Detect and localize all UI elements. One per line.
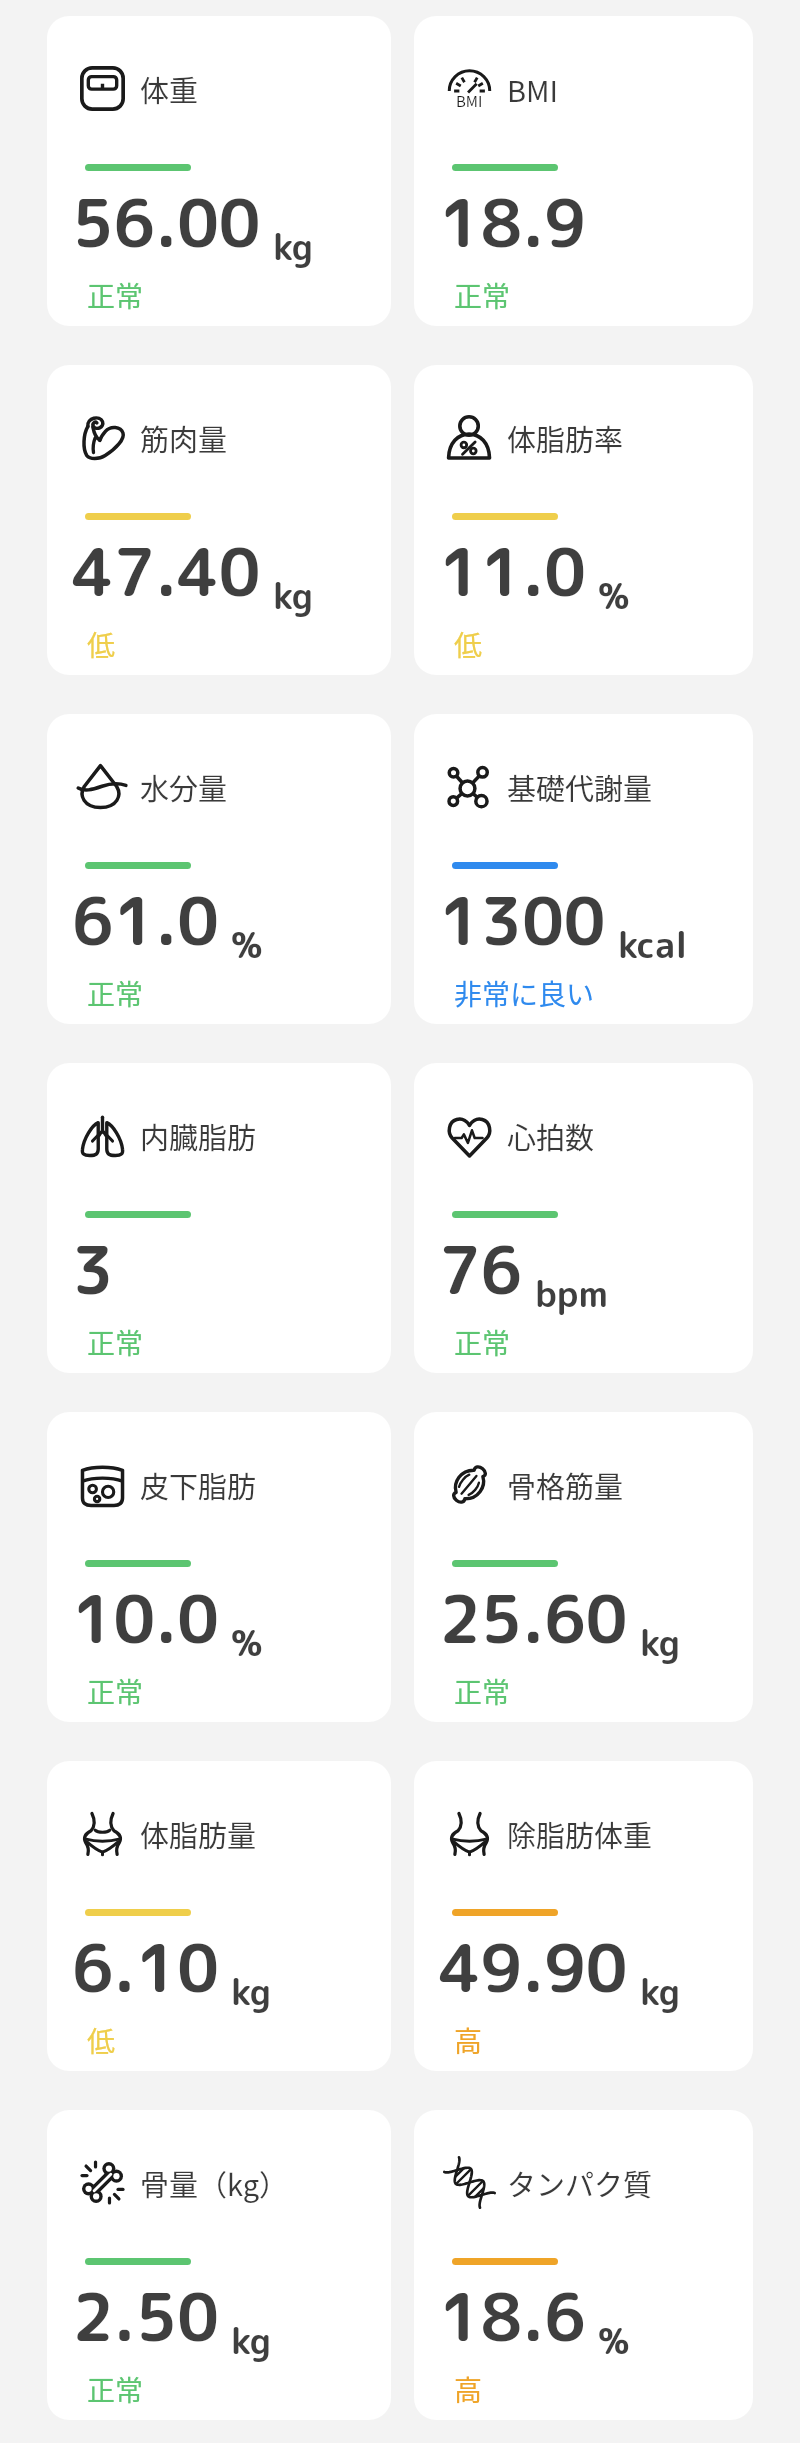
staticText: 低 bbox=[87, 624, 116, 665]
staticText: 25.60 bbox=[439, 1573, 628, 1664]
staticText: 皮下脂肪 bbox=[140, 1464, 257, 1506]
staticText: 6.10 bbox=[72, 1922, 219, 2013]
staticText: 2.50 bbox=[72, 2271, 219, 2362]
button[interactable]: 除脂肪体重 bbox=[414, 1761, 753, 2071]
staticText: 18.9 bbox=[439, 177, 586, 268]
staticText: 1300 bbox=[439, 875, 606, 966]
staticText: 低 bbox=[87, 2020, 116, 2061]
staticText: 正常 bbox=[87, 2369, 144, 2410]
staticText: kg bbox=[231, 1966, 272, 2016]
staticText: kcal bbox=[618, 919, 688, 969]
staticText: kg bbox=[273, 570, 314, 620]
staticText: 体脂肪量 bbox=[140, 1813, 257, 1855]
staticText: タンパク質 bbox=[507, 2162, 653, 2204]
staticText: 正常 bbox=[87, 275, 144, 316]
staticText: 正常 bbox=[87, 1671, 144, 1712]
staticText: 筋肉量 bbox=[140, 417, 228, 459]
button[interactable]: 骨量（kg） bbox=[47, 2110, 391, 2420]
staticText: 10.0 bbox=[72, 1573, 219, 1664]
staticText: 正常 bbox=[454, 1322, 511, 1363]
staticText: 高 bbox=[454, 2020, 483, 2061]
staticText: % bbox=[231, 1617, 263, 1667]
staticText: 骨量（kg） bbox=[140, 2162, 289, 2204]
button[interactable]: 皮下脂肪 bbox=[47, 1412, 391, 1722]
staticText: 61.0 bbox=[72, 875, 219, 966]
staticText: % bbox=[231, 919, 263, 969]
staticText: 47.40 bbox=[72, 526, 261, 617]
button[interactable]: 体脂肪量 bbox=[47, 1761, 391, 2071]
button[interactable]: 内臓脂肪 bbox=[47, 1063, 391, 1373]
staticText: bpm bbox=[535, 1268, 608, 1318]
staticText: 低 bbox=[454, 624, 483, 665]
staticText: 水分量 bbox=[140, 766, 228, 808]
button[interactable]: 水分量 bbox=[47, 714, 391, 1024]
staticText: 体脂肪率 bbox=[507, 417, 624, 459]
staticText: 心拍数 bbox=[507, 1115, 595, 1157]
staticText: 内臓脂肪 bbox=[140, 1115, 257, 1157]
staticText: 18.6 bbox=[439, 2271, 586, 2362]
button[interactable]: 体脂肪率 bbox=[414, 365, 753, 675]
button[interactable]: 体重 bbox=[47, 16, 391, 326]
staticText: 体重 bbox=[140, 68, 199, 110]
button[interactable]: 筋肉量 bbox=[47, 365, 391, 675]
staticText: 非常に良い bbox=[454, 973, 595, 1014]
staticText: kg bbox=[640, 1617, 681, 1667]
staticText: BMI bbox=[507, 68, 559, 110]
staticText: % bbox=[598, 570, 630, 620]
staticText: 正常 bbox=[87, 973, 144, 1014]
button[interactable]: 基礎代謝量 bbox=[414, 714, 753, 1024]
staticText: 正常 bbox=[87, 1322, 144, 1363]
staticText: kg bbox=[273, 221, 314, 271]
button[interactable]: 骨格筋量 bbox=[414, 1412, 753, 1722]
staticText: 正常 bbox=[454, 1671, 511, 1712]
staticText: BMI bbox=[456, 90, 483, 112]
staticText: 除脂肪体重 bbox=[507, 1813, 653, 1855]
staticText: 3 bbox=[72, 1224, 114, 1315]
staticText: % bbox=[598, 2315, 630, 2365]
staticText: 正常 bbox=[454, 275, 511, 316]
staticText: 76 bbox=[439, 1224, 523, 1315]
staticText: 11.0 bbox=[439, 526, 586, 617]
button[interactable]: 心拍数 bbox=[414, 1063, 753, 1373]
button[interactable]: BMI bbox=[414, 16, 753, 326]
staticText: 高 bbox=[454, 2369, 483, 2410]
button[interactable]: タンパク質 bbox=[414, 2110, 753, 2420]
staticText: 基礎代謝量 bbox=[507, 766, 653, 808]
staticText: kg bbox=[640, 1966, 681, 2016]
staticText: 56.00 bbox=[72, 177, 261, 268]
staticText: 49.90 bbox=[439, 1922, 628, 2013]
staticText: 骨格筋量 bbox=[507, 1464, 624, 1506]
staticText: kg bbox=[231, 2315, 272, 2365]
